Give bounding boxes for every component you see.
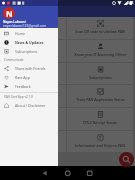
button[interactable]: Search <box>119 152 134 167</box>
staticText: PAN Card App v2.1.0 <box>4 95 33 99</box>
button[interactable]: Feedback <box>4 82 58 91</box>
button[interactable]: Link Aadhaar <box>1 85 66 107</box>
staticText: 8:48 <box>127 1 134 5</box>
button[interactable]: Information and Help on PAN <box>67 131 133 152</box>
button[interactable]: Home <box>4 29 58 38</box>
button[interactable]: Scan QR code to validate PAN <box>67 17 133 39</box>
button[interactable]: ITR-V Receipt Status <box>67 108 133 130</box>
staticText: Subscriptions <box>89 75 112 80</box>
staticText: About / Disclaimer <box>15 103 46 108</box>
staticText: Feedback <box>15 84 31 89</box>
staticText: Know your IT Assessing Officer <box>74 52 127 57</box>
staticText: News & Updates <box>15 40 44 45</box>
button[interactable]: Reprint PAN Card <box>1 63 66 84</box>
staticText: Apply for New PAN <box>18 29 50 34</box>
button[interactable]: News & Updates <box>4 38 58 47</box>
button[interactable]: Know your PAN <box>1 108 66 130</box>
staticText: Share with Friends <box>15 66 46 71</box>
button[interactable]: Apply for New PAN <box>1 17 66 39</box>
button[interactable]: PAN Verification <box>1 131 66 152</box>
staticText: ITR-V Receipt Status <box>83 120 117 125</box>
staticText: Nayan Lakwani <box>3 20 26 24</box>
button[interactable]: About / Disclaimer <box>4 101 58 110</box>
staticText: Communicate <box>4 58 24 62</box>
staticText: Link Aadhaar <box>22 97 45 102</box>
staticText: Reprint PAN Card <box>19 75 49 80</box>
button[interactable]: Share with Friends <box>4 64 58 73</box>
staticText: Information and Help on PAN <box>75 143 125 148</box>
staticText: Home <box>15 31 25 36</box>
staticText: N <box>6 8 13 19</box>
button[interactable]: Track PAN Application Status <box>67 85 133 107</box>
button[interactable]: Subscriptions <box>67 63 133 84</box>
staticText: nayanlakwani123@gmail.com <box>3 24 47 28</box>
button[interactable]: Subscriptions <box>4 47 58 56</box>
button[interactable]: Rate App <box>4 73 58 82</box>
staticText: Scan QR code to validate PAN <box>75 29 125 34</box>
staticText: Track PAN Application Status <box>76 97 125 102</box>
staticText: Rate App <box>15 75 30 80</box>
button[interactable]: Correction in PAN <box>1 40 66 62</box>
staticText: Correction in PAN <box>19 52 49 57</box>
button[interactable]: Know your IT Assessing Officer <box>67 40 133 62</box>
staticText: Subscriptions <box>15 49 38 54</box>
